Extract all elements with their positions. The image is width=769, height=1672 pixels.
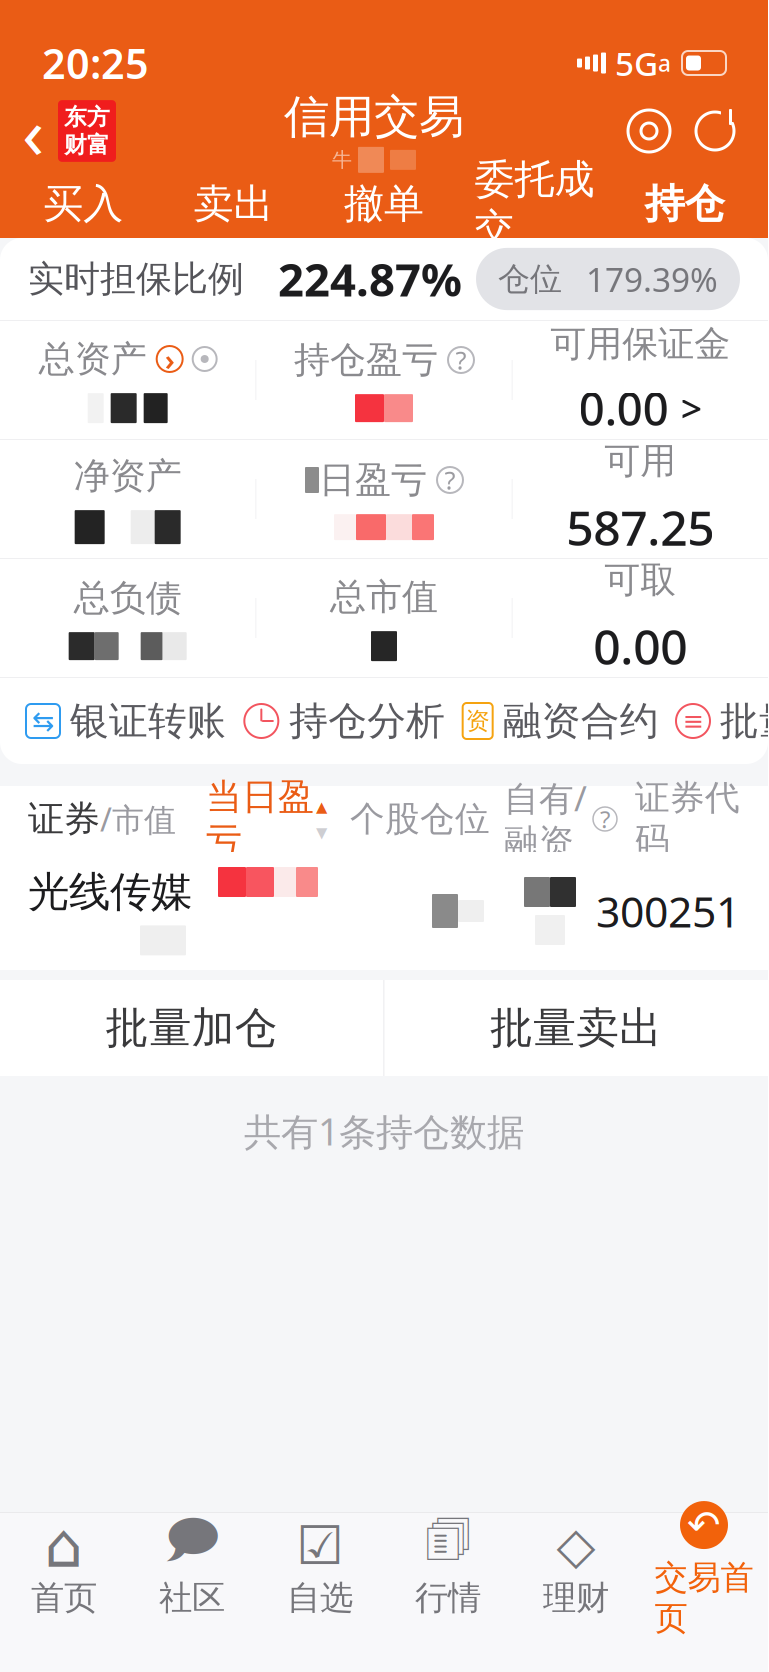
staticText: 批量: [720, 697, 769, 745]
staticText: 总负债: [74, 576, 182, 620]
button[interactable]: 委托成交: [459, 170, 610, 238]
staticText: 可用: [604, 439, 676, 483]
staticText: 仓位: [498, 259, 562, 299]
staticText: 224.87%: [278, 249, 462, 309]
staticText: 总市值: [330, 575, 438, 619]
staticText: ≡: [682, 707, 703, 735]
staticText: ?: [444, 463, 455, 497]
button[interactable]: ↶: [640, 1513, 768, 1625]
button[interactable]: 返回: [0, 96, 126, 166]
staticText: ↶: [687, 1502, 721, 1548]
staticText: 587.25: [566, 495, 714, 559]
button[interactable]: ◇: [512, 1513, 640, 1625]
staticText: 0.00: [593, 614, 687, 678]
staticText: 实时担保比例: [28, 257, 244, 301]
staticText: 融资合约: [503, 697, 659, 745]
button[interactable]: 🗩: [128, 1513, 256, 1625]
staticText: ‹: [22, 83, 44, 179]
button[interactable]: 资: [463, 687, 659, 755]
staticText: ⇆: [32, 706, 54, 736]
staticText: 牛: [332, 148, 352, 172]
staticText: 当日盈亏: [206, 775, 314, 863]
staticText: 179.39%: [586, 257, 718, 301]
button[interactable]: 🗊: [384, 1513, 512, 1625]
staticText: 卖出: [194, 179, 274, 228]
staticText: ▾: [316, 819, 327, 845]
staticText: 首页: [31, 1577, 97, 1618]
button[interactable]: 持仓分析: [243, 687, 445, 755]
staticText: 批量卖出: [490, 1002, 662, 1054]
staticText: 🗊: [424, 1504, 471, 1587]
button[interactable]: 当日盈亏: [206, 775, 327, 863]
button[interactable]: 卖出: [158, 170, 309, 238]
staticText: 光线传媒: [28, 867, 192, 917]
staticText: 持仓盈亏: [294, 338, 438, 382]
button[interactable]: 刷新: [688, 104, 742, 158]
staticText: 买入: [43, 179, 123, 228]
button[interactable]: ≡: [676, 687, 769, 755]
staticText: 理财: [543, 1577, 609, 1618]
button[interactable]: 撤单: [309, 170, 459, 238]
button[interactable]: 批量加仓: [0, 980, 383, 1076]
staticText: >: [681, 383, 702, 433]
staticText: ?: [455, 343, 466, 377]
button[interactable]: 持仓: [610, 170, 760, 238]
staticText: 资: [466, 706, 490, 736]
staticText: 社区: [159, 1577, 225, 1618]
staticText: 5G: [615, 41, 658, 85]
staticText: 持仓分析: [289, 697, 445, 745]
staticText: 持仓: [645, 179, 725, 228]
staticText: 自选: [287, 1577, 353, 1618]
staticText: 🗩: [164, 1504, 220, 1587]
staticText: 可取: [604, 558, 676, 602]
staticText: 证券代码: [635, 776, 740, 862]
button[interactable]: ☑: [256, 1513, 384, 1625]
staticText: 总资产: [39, 337, 147, 381]
staticText: 300251: [596, 883, 740, 939]
button[interactable]: ⌂: [0, 1513, 128, 1625]
staticText: 净资产: [74, 454, 182, 498]
staticText: ?: [600, 803, 610, 835]
staticText: 信用交易: [284, 89, 464, 145]
button[interactable]: 光线传媒: [0, 852, 768, 970]
staticText: ▴: [316, 793, 327, 819]
button[interactable]: 买入: [8, 170, 158, 238]
staticText: 日盈亏: [319, 458, 427, 502]
staticText: a: [658, 48, 671, 78]
staticText: 0.00: [579, 378, 669, 438]
button[interactable]: 批量卖出: [384, 980, 768, 1076]
staticText: 共有1条持仓数据: [244, 1106, 524, 1156]
staticText: 个股仓位: [350, 798, 490, 840]
staticText: 委托成交: [474, 155, 594, 253]
staticText: ☑: [296, 1515, 344, 1576]
staticText: 证券: [28, 797, 100, 841]
staticText: 撤单: [344, 179, 424, 228]
staticText: ◇: [556, 1517, 595, 1574]
staticText: 行情: [415, 1577, 481, 1618]
staticText: 东方 财富: [64, 103, 110, 159]
staticText: 自有/融资: [504, 775, 587, 863]
staticText: 20:25: [42, 36, 149, 90]
button[interactable]: ⇆: [26, 687, 226, 755]
staticText: 银证转账: [70, 697, 226, 745]
staticText: /市值: [100, 798, 176, 840]
staticText: 可用保证金: [550, 322, 730, 366]
staticText: 批量加仓: [106, 1002, 278, 1054]
button[interactable]: 设置: [622, 104, 676, 158]
staticText: ⌂: [44, 1511, 83, 1580]
staticText: 交易首页: [654, 1557, 753, 1639]
staticText: ›: [165, 339, 175, 378]
